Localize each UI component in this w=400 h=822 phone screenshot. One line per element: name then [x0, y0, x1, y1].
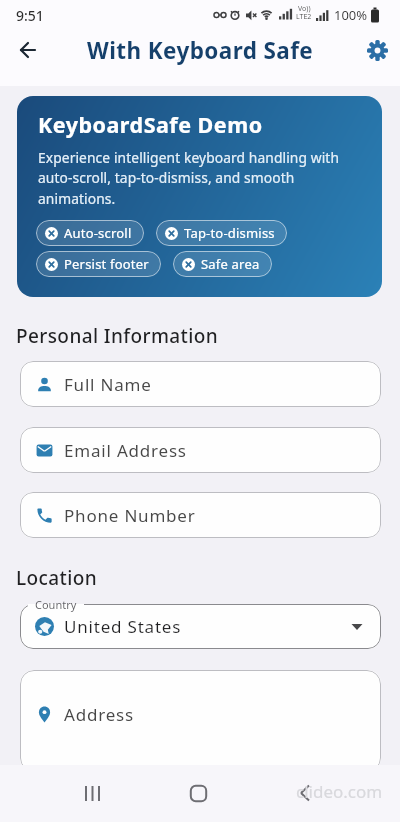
staticText: 9:51: [16, 6, 44, 25]
staticText: Location: [16, 565, 98, 591]
staticText: Experience intelligent keyboard handling…: [38, 148, 340, 209]
button[interactable]: Email Address: [20, 427, 381, 473]
staticText: Safe area: [201, 255, 260, 273]
button[interactable]: Persist footer: [36, 251, 161, 277]
staticText: Phone Number: [64, 504, 196, 527]
button[interactable]: Address: [20, 670, 381, 772]
button[interactable]: [73, 773, 113, 813]
button[interactable]: Phone Number: [20, 492, 381, 538]
button[interactable]: Full Name: [20, 361, 381, 407]
button[interactable]: Safe area: [173, 251, 272, 277]
button[interactable]: Tap-to-dismiss: [156, 220, 287, 246]
button[interactable]: Auto-scroll: [36, 220, 144, 246]
button[interactable]: [178, 773, 218, 813]
staticText: clideo.com: [296, 780, 383, 803]
staticText: Email Address: [64, 439, 187, 462]
staticText: Country: [35, 597, 77, 612]
staticText: Address: [64, 703, 134, 726]
staticText: Tap-to-dismiss: [184, 224, 275, 242]
staticText: LTE2: [296, 12, 312, 22]
staticText: Auto-scroll: [64, 224, 132, 242]
staticText: KeyboardSafe Demo: [38, 110, 263, 139]
staticText: Personal Information: [16, 323, 219, 349]
staticText: With Keyboard Safe: [87, 35, 314, 66]
staticText: Persist footer: [64, 255, 149, 273]
button[interactable]: [357, 30, 397, 70]
staticText: United States: [64, 615, 182, 638]
button[interactable]: [8, 30, 48, 70]
staticText: Vo)): [298, 4, 311, 14]
button[interactable]: United States: [20, 604, 381, 649]
button[interactable]: [285, 773, 325, 813]
staticText: 100%: [334, 6, 368, 24]
staticText: Full Name: [64, 373, 152, 396]
